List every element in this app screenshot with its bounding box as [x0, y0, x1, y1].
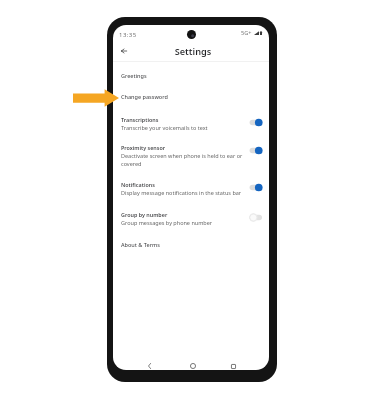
button[interactable]: Proximity sensor [113, 139, 269, 162]
staticText: About & Terms [121, 241, 160, 248]
button[interactable] [249, 213, 263, 222]
button[interactable]: Back [143, 360, 155, 370]
button[interactable] [249, 118, 263, 127]
staticText: Proximity sensor [121, 144, 249, 151]
button[interactable] [249, 183, 263, 192]
button[interactable]: Back [117, 44, 130, 57]
button[interactable] [249, 146, 263, 155]
button[interactable]: Home [187, 360, 199, 370]
button[interactable]: About & Terms [113, 234, 269, 250]
staticText: Group by number [121, 211, 249, 218]
button[interactable]: Group by number [113, 206, 269, 229]
button[interactable]: Greetings [113, 65, 269, 81]
button[interactable]: Notifications [113, 176, 269, 199]
staticText: Settings [115, 45, 269, 58]
staticText: Display message notifications in the sta… [121, 189, 253, 196]
staticText: 5G+ [241, 29, 252, 37]
button[interactable]: Recent apps [227, 360, 239, 370]
staticText: Notifications [121, 181, 249, 188]
button[interactable]: Change password [113, 86, 269, 102]
button[interactable]: Transcriptions [113, 111, 269, 134]
staticText: Transcribe your voicemails to text [121, 124, 253, 131]
staticText: 13:35 [119, 31, 137, 39]
staticText: covered [121, 160, 253, 167]
staticText: Greetings [121, 72, 147, 79]
staticText: Change password [121, 93, 168, 100]
staticText: Transcriptions [121, 116, 249, 123]
staticText: Deactivate screen when phone is held to … [121, 152, 253, 159]
staticText: Group messages by phone number [121, 219, 253, 226]
